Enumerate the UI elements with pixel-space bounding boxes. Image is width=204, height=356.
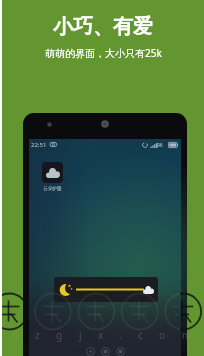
staticText: 96 (157, 142, 163, 149)
staticText: m (182, 328, 192, 342)
staticText: d (12, 328, 19, 342)
button[interactable]: Back (86, 347, 95, 356)
staticText: . (119, 328, 122, 342)
staticText: 萌萌的界面，大小只有25k (45, 46, 162, 60)
button[interactable] (54, 277, 158, 302)
staticText: 22:51 (31, 141, 47, 149)
staticText: x (98, 328, 104, 342)
staticText: z (35, 328, 40, 342)
staticText: o (159, 328, 166, 342)
button[interactable]: 云朵护眼 (42, 162, 63, 183)
button[interactable]: Recents (116, 347, 125, 356)
staticText: 云朵护眼 (43, 186, 62, 192)
button[interactable]: Home (101, 347, 110, 356)
staticText: c (138, 328, 143, 342)
staticText: g (56, 328, 63, 342)
staticText: j (79, 328, 82, 342)
staticText: 小巧、有爱 (53, 14, 153, 39)
